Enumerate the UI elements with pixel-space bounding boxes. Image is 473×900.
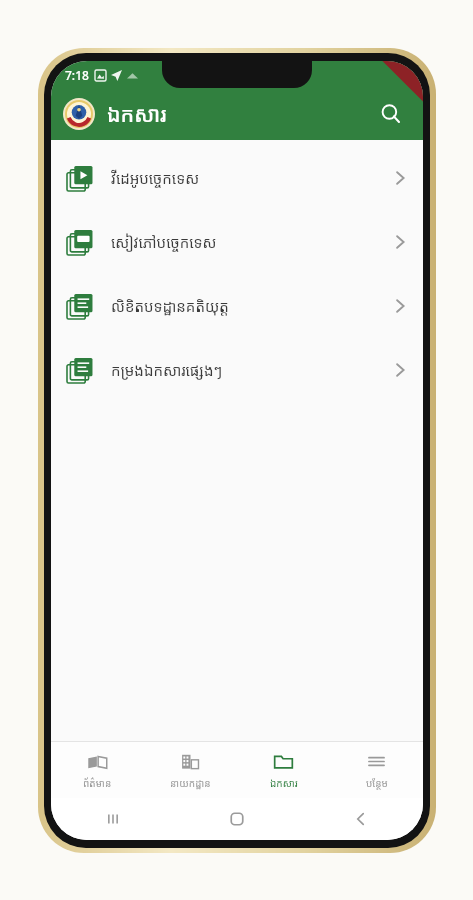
button[interactable]: Home — [175, 798, 299, 840]
button[interactable]: Back — [299, 798, 423, 840]
button[interactable]: ឯកសារ — [237, 742, 330, 798]
staticText: នាយកដ្ឋាន — [170, 776, 211, 790]
button[interactable]: Search — [371, 94, 411, 134]
staticText: បន្ថែម — [366, 776, 388, 790]
button[interactable]: Logo — [63, 98, 95, 130]
button[interactable]: វីដេអូបច្ចេកទេស — [51, 146, 423, 210]
staticText: ឯកសារ — [270, 776, 298, 790]
staticText: សៀវភៅបច្ចេកទេស — [111, 232, 217, 252]
staticText: ឯកសារ — [107, 100, 167, 129]
button[interactable]: កម្រងឯកសារផ្សេងៗ — [51, 338, 423, 402]
button[interactable]: លិខិតបទដ្ឋានគតិយុត្ត — [51, 274, 423, 338]
button[interactable]: ព័ត៌មាន — [51, 742, 144, 798]
staticText: លិខិតបទដ្ឋានគតិយុត្ត — [111, 296, 229, 316]
button[interactable]: នាយកដ្ឋាន — [144, 742, 237, 798]
staticText: កម្រងឯកសារផ្សេងៗ — [111, 360, 223, 380]
staticText: ព័ត៌មាន — [83, 776, 112, 790]
button[interactable]: Recents — [51, 798, 175, 840]
staticText: 7:18 — [65, 67, 89, 83]
button[interactable]: បន្ថែម — [330, 742, 423, 798]
staticText: វីដេអូបច្ចេកទេស — [111, 168, 200, 188]
button[interactable]: សៀវភៅបច្ចេកទេស — [51, 210, 423, 274]
